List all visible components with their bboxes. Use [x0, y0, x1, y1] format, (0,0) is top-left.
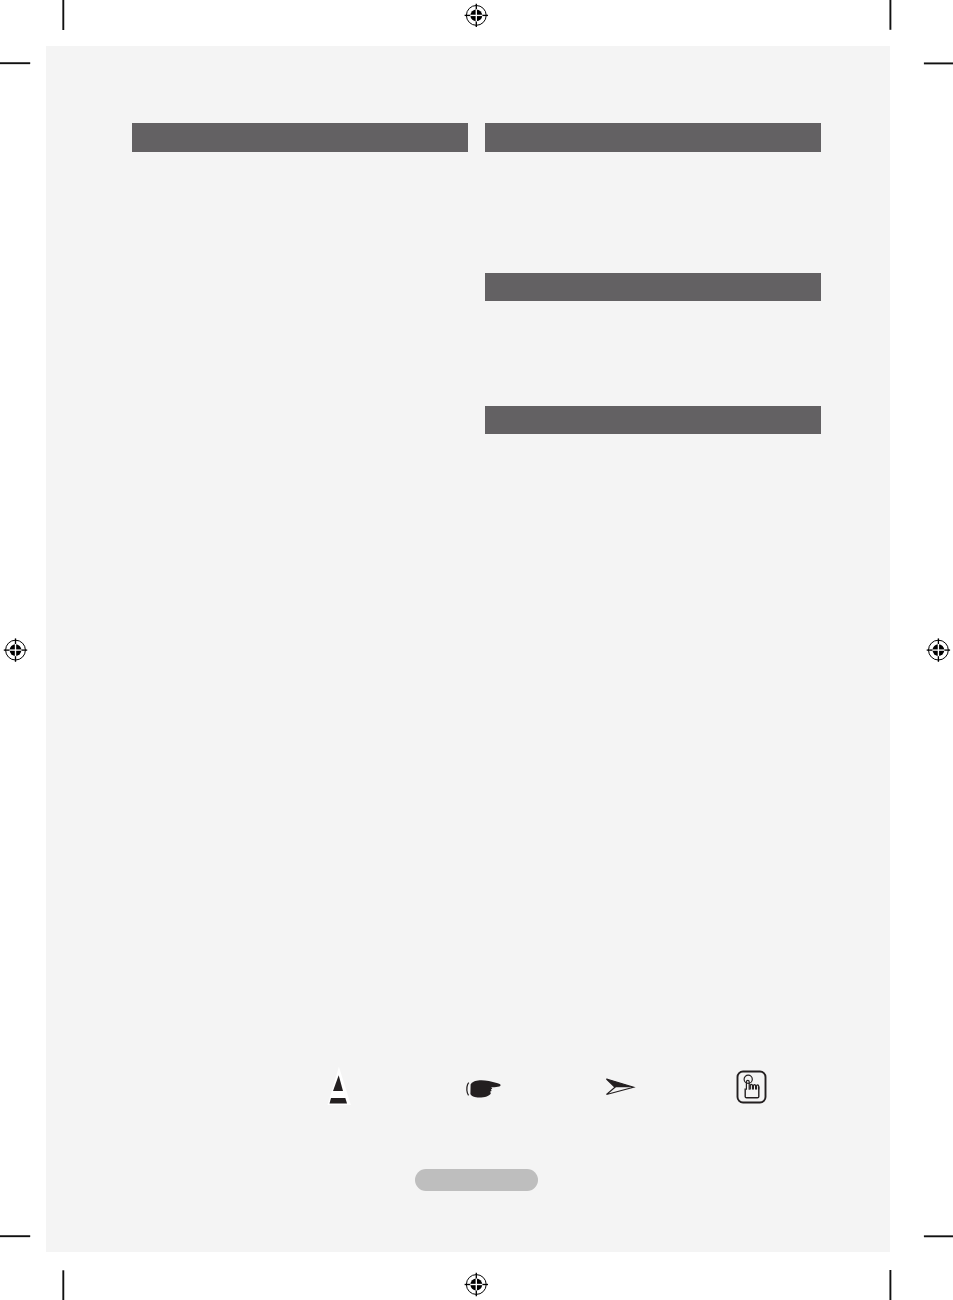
- button[interactable]: Note: [463, 1073, 503, 1103]
- button[interactable]: Warning: [318, 1064, 360, 1110]
- button[interactable]: Press button: [734, 1068, 769, 1106]
- button[interactable]: Send: [603, 1074, 637, 1100]
- button[interactable]: Page number: [415, 1169, 538, 1191]
